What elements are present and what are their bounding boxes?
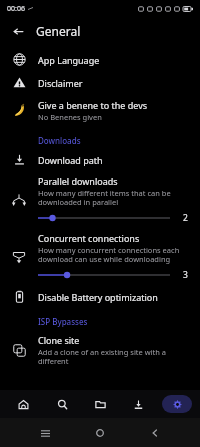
staticText: 00:06 xyxy=(7,4,25,14)
button[interactable]: Concurrent connections xyxy=(0,228,200,285)
button[interactable]: Back xyxy=(145,423,165,443)
staticText: Download path xyxy=(38,154,103,166)
staticText: App Language xyxy=(38,54,100,66)
button[interactable]: Home xyxy=(8,395,38,413)
staticText: 3 xyxy=(183,269,188,281)
button[interactable]: Back xyxy=(8,21,28,41)
button[interactable]: Disclaimer xyxy=(0,71,200,94)
button[interactable]: Disable Battery optimization xyxy=(0,285,200,308)
button[interactable]: Parallel downloads xyxy=(0,171,200,228)
staticText: Give a benene to the devs xyxy=(38,99,148,111)
button[interactable]: Settings xyxy=(162,395,192,413)
staticText: Downloads xyxy=(38,135,81,146)
staticText: Parallel downloads xyxy=(38,175,118,187)
button[interactable]: App Language xyxy=(0,48,200,71)
staticText: Concurrent connections xyxy=(38,232,140,244)
button[interactable]: Downloads xyxy=(123,395,153,413)
staticText: How many concurrent connections each dow… xyxy=(38,245,192,265)
button[interactable]: Search xyxy=(47,395,77,413)
button[interactable]: Clone site xyxy=(0,329,200,371)
button[interactable]: Library xyxy=(85,395,115,413)
staticText: Disclaimer xyxy=(38,77,83,89)
staticText: Disable Battery optimization xyxy=(38,291,158,303)
staticText: ISP Bypasses xyxy=(38,316,88,327)
button[interactable]: Download path xyxy=(0,148,200,171)
staticText: No Benenes given xyxy=(38,112,102,122)
button[interactable]: Home xyxy=(90,423,110,443)
button[interactable]: Give a benene to the devs xyxy=(0,94,200,127)
button[interactable]: Recents xyxy=(35,423,55,443)
staticText: Clone site xyxy=(38,334,80,346)
staticText: 2 xyxy=(183,212,188,224)
staticText: Add a clone of an existing site with a d… xyxy=(38,347,192,366)
staticText: How many different items that can be dow… xyxy=(38,188,192,208)
staticText: General xyxy=(36,23,81,39)
